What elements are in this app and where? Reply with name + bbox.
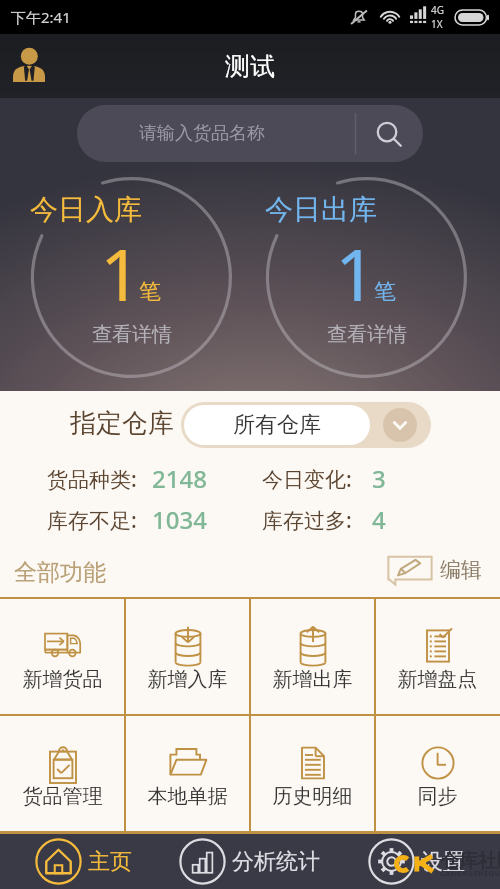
staticText: 货品种类: [47,465,137,494]
button[interactable]: 历史明细 [250,716,375,831]
button[interactable]: 编辑 [387,552,482,588]
staticText: 编辑 [440,557,482,583]
staticText: 今日变化: [262,465,352,494]
button[interactable]: 分析统计 [166,834,333,889]
button[interactable]: 同步 [375,716,500,831]
staticText: CANGKUSHEQU [440,869,500,879]
staticText: 所有仓库 [233,411,321,439]
button[interactable]: 新增盘点 [375,599,500,714]
staticText: 库存过多: [262,506,352,535]
staticText: 新增货品 [0,667,125,692]
staticText: 4G [431,3,444,17]
staticText: 新增入库 [125,667,250,692]
staticText: 笔 [139,278,161,306]
staticText: 本地单据 [125,784,250,809]
button[interactable]: 新增货品 [0,599,125,714]
staticText: 测试 [225,51,275,82]
staticText: 1 [335,224,377,322]
button[interactable]: 本地单据 [125,716,250,831]
button[interactable]: 主页 [0,834,166,889]
staticText: 新增出库 [250,667,375,692]
staticText: 1X [431,17,443,31]
staticText: 今日入库 [30,192,142,227]
button[interactable]: 货品管理 [0,716,125,831]
staticText: 新增盘点 [375,667,500,692]
staticText: 指定仓库 [70,407,174,440]
button[interactable]: 设置 [333,834,500,889]
staticText: 笔 [374,278,396,306]
button[interactable]: Account [0,34,57,98]
staticText: 主页 [88,848,132,876]
button[interactable]: 所有仓库 [181,402,431,448]
staticText: 下午2:41 [11,7,71,27]
staticText: 1 [100,224,142,322]
staticText: 1034 [152,503,207,536]
staticText: 同步 [375,784,500,809]
staticText: 设置 [421,848,465,876]
button[interactable]: 请输入货品名称 [77,105,423,162]
staticText: 2148 [152,462,207,495]
staticText: 历史明细 [250,784,375,809]
staticText: 今日出库 [265,192,377,227]
staticText: 3 [372,462,386,495]
staticText: 货品管理 [0,784,125,809]
staticText: 全部功能 [14,558,106,587]
staticText: 分析统计 [232,848,320,876]
staticText: 请输入货品名称 [139,122,265,145]
button[interactable] [266,177,467,378]
staticText: 查看详情 [267,322,467,347]
staticText: 仓库社区 [440,849,500,873]
staticText: 查看详情 [32,322,232,347]
button[interactable]: 新增出库 [250,599,375,714]
button[interactable]: 新增入库 [125,599,250,714]
staticText: 4 [372,503,386,536]
button[interactable] [31,177,232,378]
staticText: 库存不足: [47,506,137,535]
